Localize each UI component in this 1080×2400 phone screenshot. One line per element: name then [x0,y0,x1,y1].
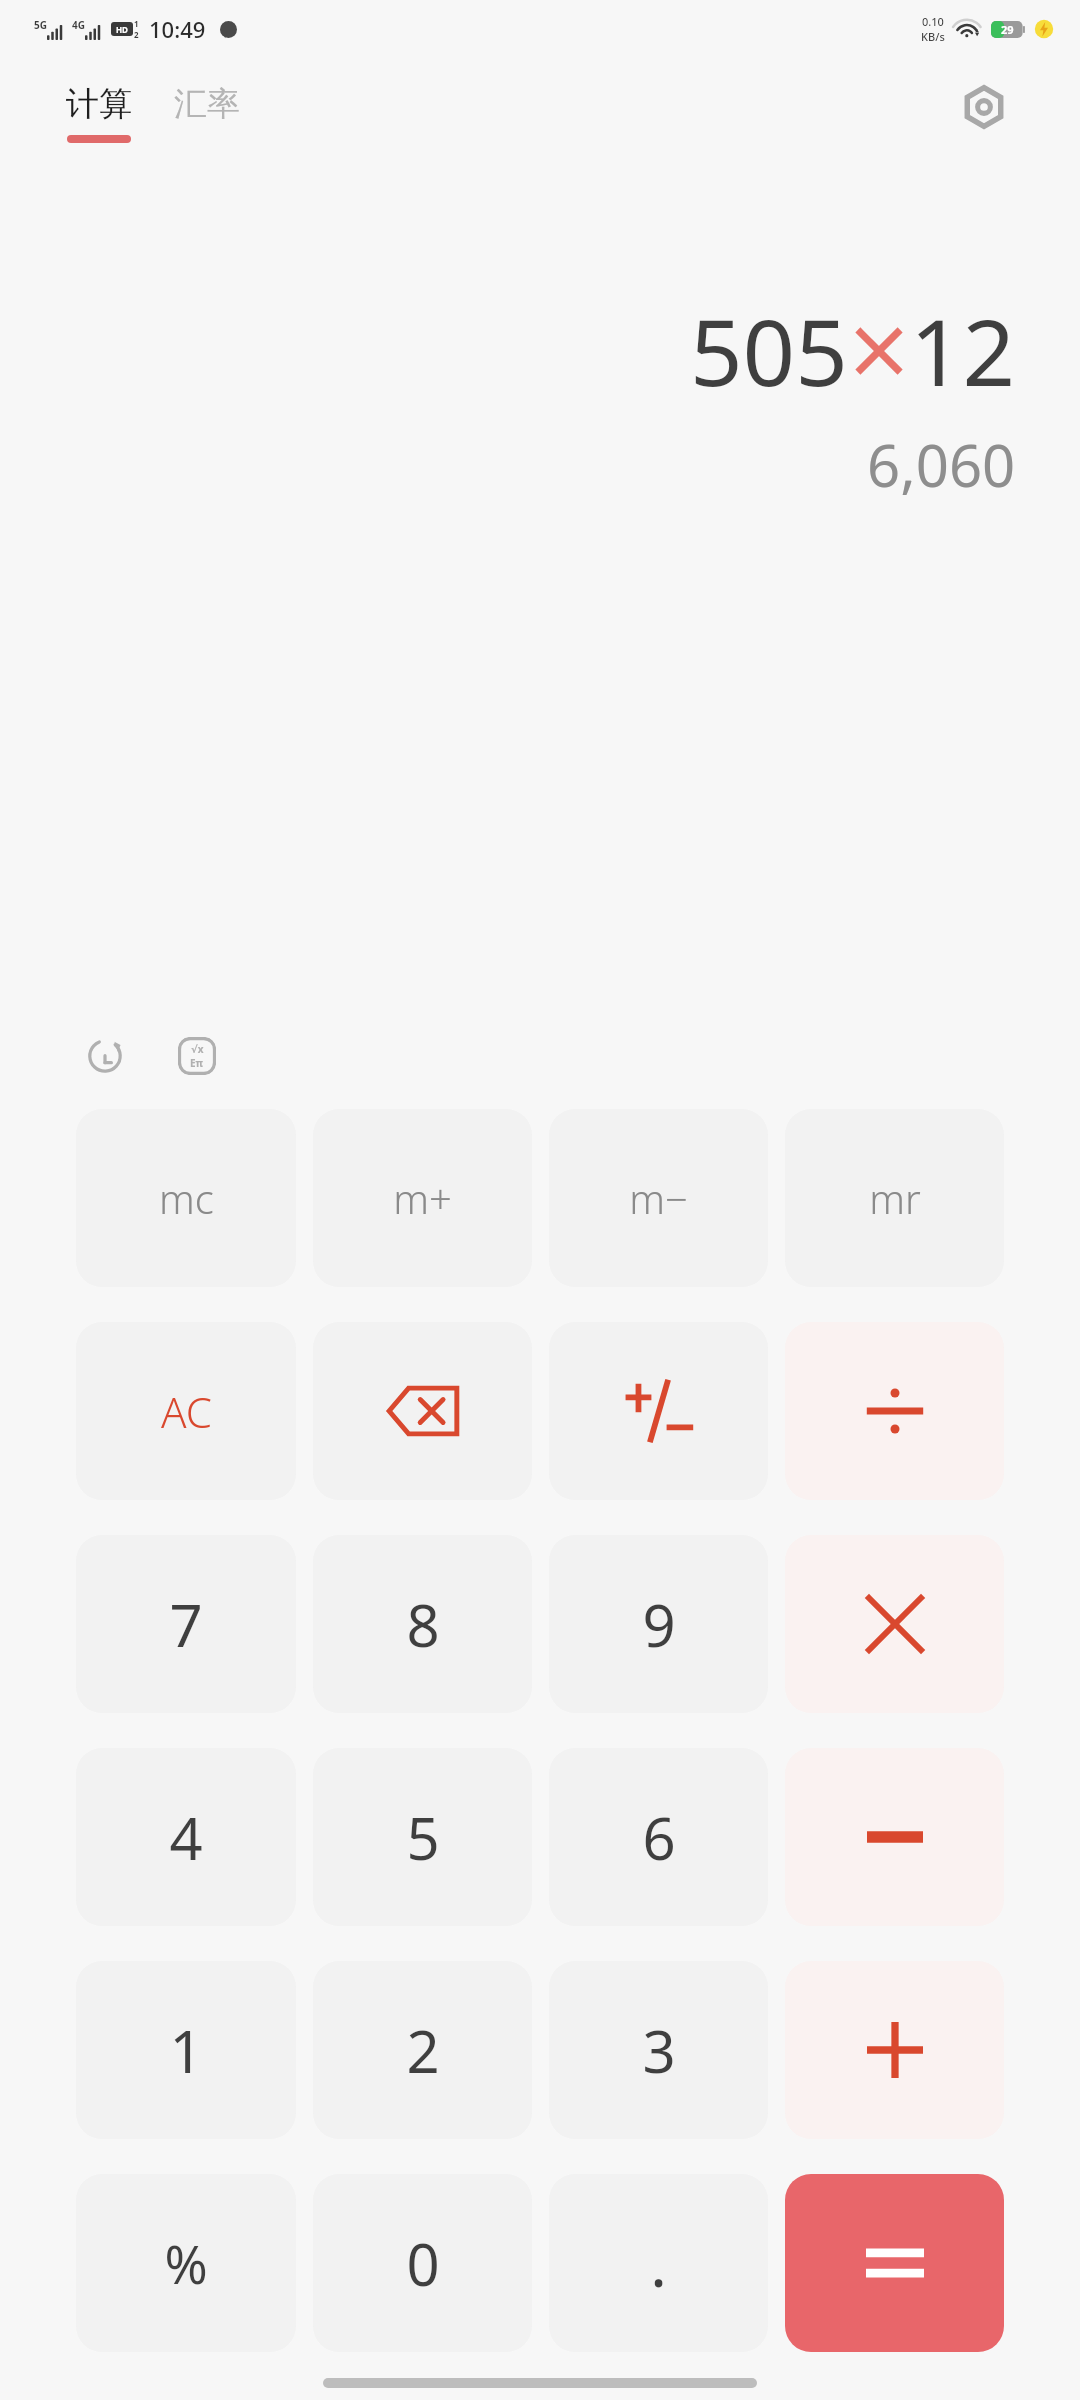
staticText: 6 [642,1798,676,1877]
staticText: % [164,2228,208,2299]
staticText: mc [159,1171,214,1225]
button[interactable]: 3 [549,1961,768,2139]
staticText: 5 [406,1798,440,1877]
button[interactable]: mr [785,1109,1004,1287]
staticText: 5G [34,18,47,32]
button[interactable]: m− [549,1109,768,1287]
staticText: √x [191,1042,204,1056]
button[interactable]: . [549,2174,768,2352]
staticText: 计算 [66,83,132,125]
button[interactable]: Multiply [785,1535,1004,1713]
button[interactable]: mc [76,1109,296,1287]
staticText: 0.10 [922,14,944,29]
button[interactable]: 2 [313,1961,532,2139]
staticText: Eπ [190,1056,204,1070]
staticText: 4 [169,1798,203,1877]
staticText: 29 [1001,22,1014,37]
button[interactable]: 1 [76,1961,296,2139]
button[interactable]: Toggle sign [549,1322,768,1500]
button[interactable]: m+ [313,1109,532,1287]
button[interactable]: Plus [785,1961,1004,2139]
button[interactable]: 9 [549,1535,768,1713]
staticText: 12 [910,288,1016,413]
staticText: 2 [134,29,139,40]
staticText: 0 [406,2224,440,2303]
button[interactable]: 0 [313,2174,532,2352]
staticText: HD [116,24,128,35]
button[interactable]: Minus [785,1748,1004,1926]
staticText: . [650,2221,667,2305]
button[interactable]: 7 [76,1535,296,1713]
staticText: 1 [134,18,139,29]
staticText: 2 [406,2011,440,2090]
button[interactable]: Scientific mode [170,1029,224,1083]
staticText: 6,060 [867,425,1016,504]
staticText: AC [161,1383,212,1440]
staticText: mr [869,1171,921,1225]
staticText: 9 [642,1585,676,1664]
staticText: KB/s [921,29,945,44]
staticText: 3 [642,2011,676,2090]
button[interactable]: History [78,1029,132,1083]
button[interactable]: % [76,2174,296,2352]
button[interactable]: Equals [785,2174,1004,2352]
staticText: 10:49 [149,14,206,44]
staticText: m+ [393,1171,452,1225]
button[interactable]: AC [76,1322,296,1500]
button[interactable]: Settings [952,75,1016,139]
staticText: m− [629,1171,688,1225]
button[interactable]: 6 [549,1748,768,1926]
staticText: 7 [169,1585,203,1664]
button[interactable]: Divide [785,1322,1004,1500]
button[interactable]: Backspace [313,1322,532,1500]
button[interactable]: 计算 [66,83,132,143]
staticText: 4G [72,18,85,32]
button[interactable]: 8 [313,1535,532,1713]
button[interactable]: 5 [313,1748,532,1926]
staticText: 505 [690,288,848,413]
button[interactable]: 4 [76,1748,296,1926]
button[interactable]: 汇率 [174,83,240,143]
staticText: 8 [406,1585,440,1664]
staticText: 1 [169,2011,203,2090]
staticText: 汇率 [174,83,240,125]
